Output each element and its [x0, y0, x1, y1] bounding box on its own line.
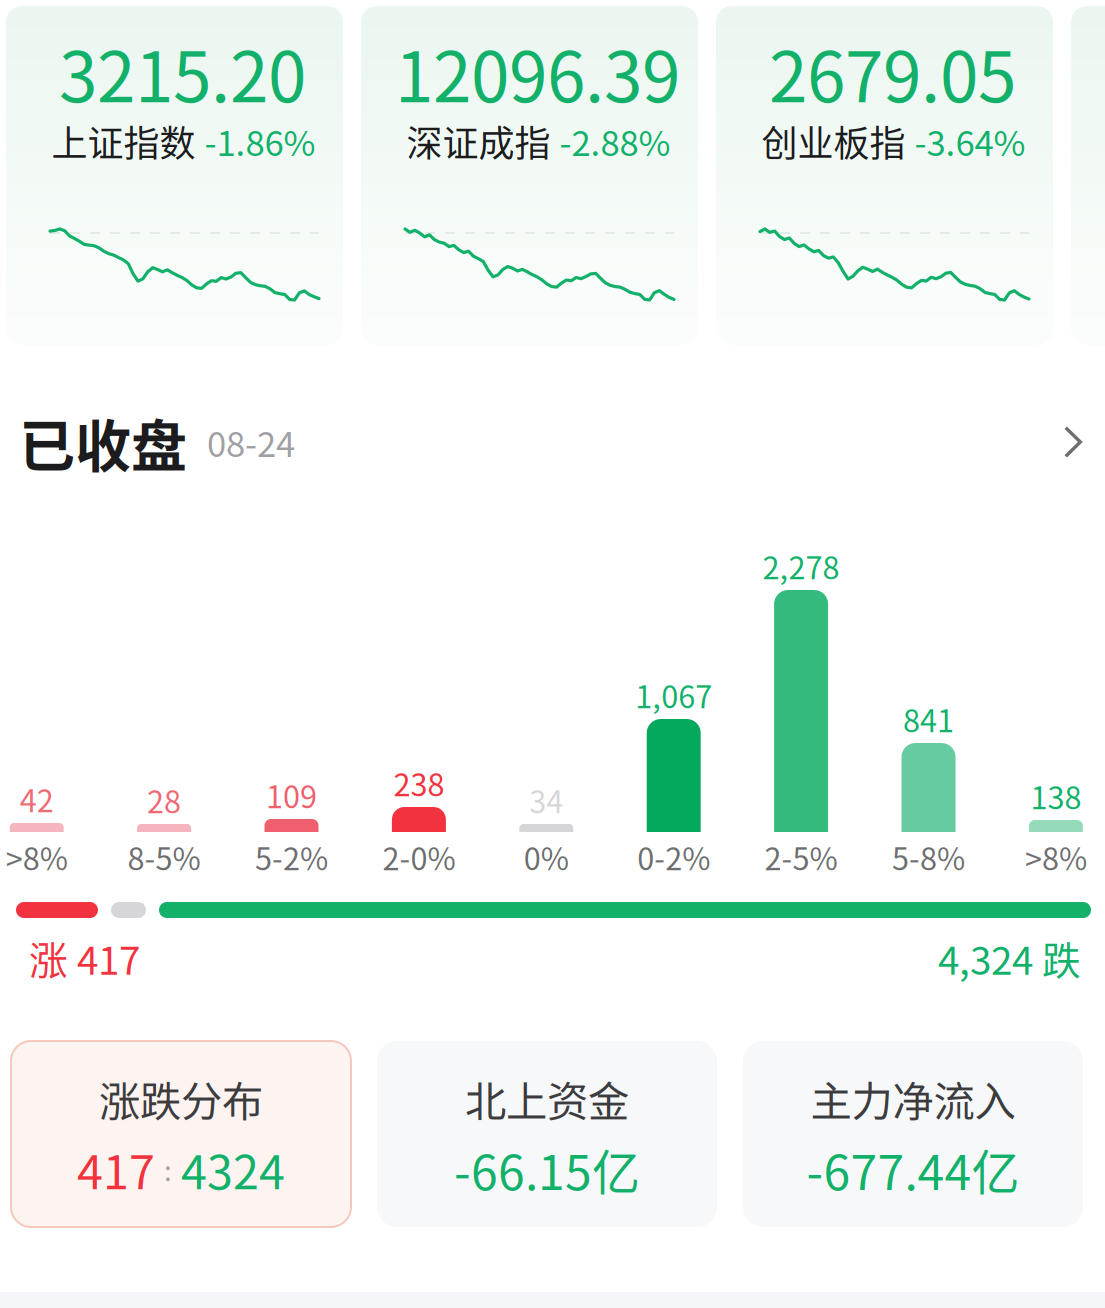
- staticText: :: [164, 1149, 172, 1189]
- staticText: 3215.20: [59, 22, 306, 122]
- staticText: 5-2%: [255, 835, 328, 879]
- staticText: 主力净流入: [810, 1069, 1015, 1128]
- staticText: >8%: [1025, 835, 1087, 879]
- staticText: -1.86%: [204, 116, 315, 166]
- staticText: 0-2%: [637, 835, 710, 879]
- staticText: 12096.39: [395, 22, 680, 122]
- staticText: 4324: [181, 1135, 285, 1203]
- staticText: 北上资金: [465, 1069, 629, 1128]
- staticText: 深证成指: [406, 115, 550, 167]
- staticText: 08-24: [207, 417, 295, 467]
- button[interactable]: 主力净流入: [743, 1041, 1083, 1227]
- staticText: 0%: [524, 835, 569, 879]
- staticText: 5-8%: [892, 835, 965, 879]
- button[interactable]: 2679.05: [716, 6, 1053, 345]
- staticText: 34: [529, 778, 563, 822]
- staticText: 上证指数: [51, 115, 195, 167]
- staticText: 238: [393, 761, 444, 805]
- staticText: 841: [903, 697, 954, 741]
- staticText: 涨跌分布: [99, 1069, 263, 1128]
- staticText: -3.64%: [914, 116, 1025, 166]
- staticText: 1,067: [635, 673, 712, 717]
- staticText: 109: [266, 773, 317, 817]
- staticText: 创业板指: [761, 115, 905, 167]
- staticText: 42: [20, 777, 54, 821]
- button[interactable]: 12096.39: [361, 6, 698, 345]
- staticText: 8-5%: [128, 835, 201, 879]
- staticText: 417: [77, 1135, 155, 1203]
- staticText: 2679.05: [769, 22, 1016, 122]
- staticText: -677.44亿: [806, 1134, 1019, 1204]
- button[interactable]: 北上资金: [377, 1041, 717, 1227]
- button[interactable]: 1013.08: [1071, 6, 1105, 345]
- staticText: 涨 417: [29, 930, 140, 986]
- staticText: 4,324 跌: [938, 930, 1081, 986]
- staticText: -66.15亿: [454, 1134, 640, 1204]
- staticText: 28: [147, 778, 181, 822]
- staticText: 138: [1030, 774, 1081, 818]
- button[interactable]: 3215.20: [6, 6, 343, 345]
- button[interactable]: 已收盘: [0, 401, 1105, 483]
- staticText: >8%: [6, 835, 68, 879]
- staticText: 已收盘: [19, 401, 187, 483]
- staticText: 2,278: [763, 544, 840, 588]
- button[interactable]: 涨跌分布: [11, 1041, 351, 1227]
- staticText: 2-0%: [382, 835, 455, 879]
- staticText: 2-5%: [765, 835, 838, 879]
- staticText: -2.88%: [559, 116, 670, 166]
